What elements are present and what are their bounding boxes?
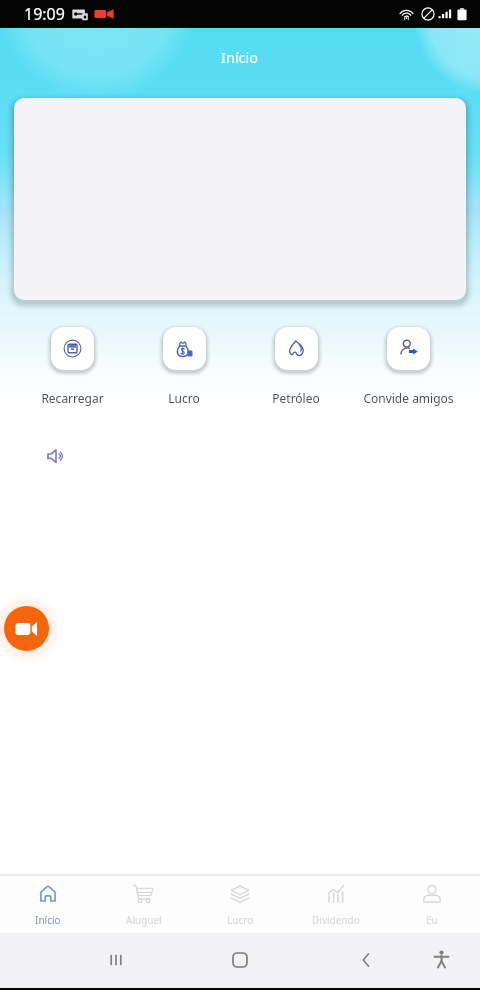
staticText: 19:09 [24,3,65,25]
button[interactable]: Home [230,950,250,970]
button[interactable]: Dividendo [288,873,384,933]
button[interactable]: Recarregar [16,323,128,406]
staticText: Dividendo [312,913,360,927]
button[interactable] [14,98,466,300]
button[interactable]: Convide amigos [352,323,464,406]
button[interactable]: Eu [384,873,480,933]
button[interactable]: Start video [4,606,49,651]
staticText: Lucro [168,390,200,406]
staticText: Recarregar [41,390,104,406]
staticText: Petróleo [272,390,320,406]
button[interactable]: Lucro [128,323,240,406]
button[interactable]: Lucro [192,873,288,933]
staticText: Início [221,47,259,67]
button[interactable]: Accessibility [431,949,452,970]
button[interactable]: Back [356,950,376,970]
button[interactable]: Aluguel [96,873,192,933]
staticText: Convide amigos [363,390,454,406]
button[interactable]: Petróleo [240,323,352,406]
button[interactable]: Recents [106,950,126,970]
staticText: Eu [426,913,438,927]
button[interactable]: Announcements [46,446,66,466]
staticText: Início [35,913,61,927]
staticText: Lucro [227,913,254,927]
staticText: Aluguel [126,913,162,927]
button[interactable]: Início [0,873,96,933]
